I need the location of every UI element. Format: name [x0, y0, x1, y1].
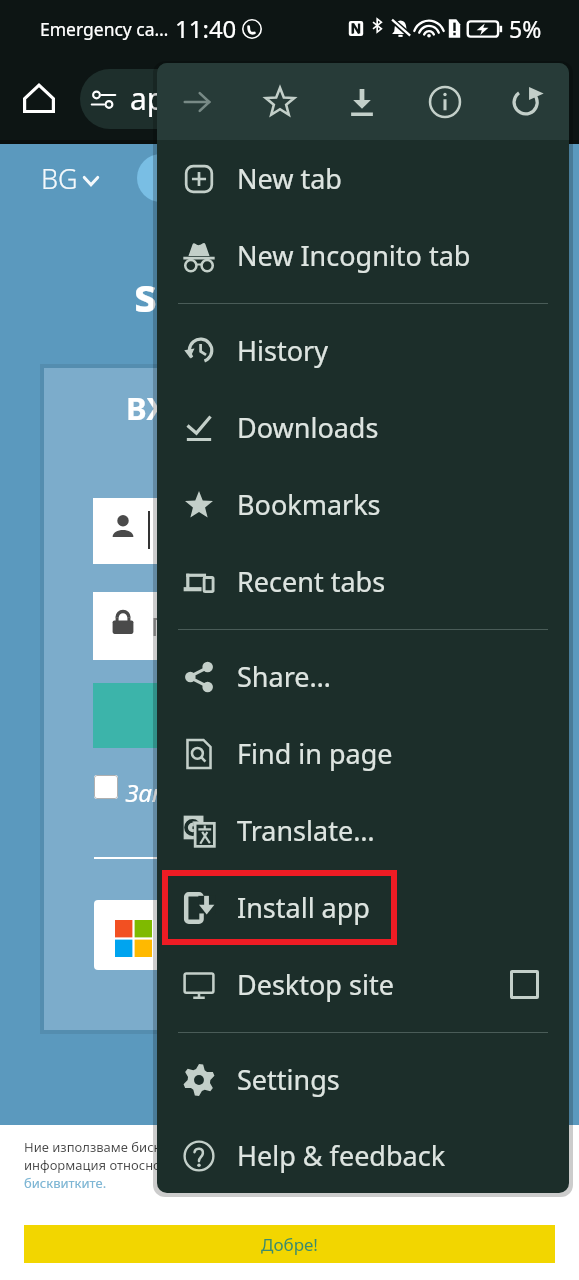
staticText: Share…	[237, 658, 331, 695]
button[interactable]: ap	[80, 69, 380, 129]
staticText: информация относно	[24, 1156, 161, 1174]
staticText: Help & feedback	[237, 1137, 446, 1174]
staticText: бисквитките.	[24, 1174, 107, 1192]
staticText: Find in page	[237, 735, 393, 772]
button[interactable]: Translate…	[157, 792, 569, 869]
button[interactable]: Bookmarks	[157, 466, 569, 543]
button[interactable]: Settings	[157, 1041, 569, 1118]
staticText: New Incognito tab	[237, 237, 471, 274]
button[interactable]: Share…	[157, 638, 569, 715]
staticText: Install app	[237, 889, 370, 926]
staticText: Emergency ca…	[40, 17, 169, 41]
staticText: Downloads	[237, 409, 379, 446]
button[interactable]: New Incognito tab	[157, 217, 569, 294]
staticText: New tab	[237, 160, 342, 197]
staticText: 5%	[509, 13, 542, 44]
button[interactable]: Forward	[167, 72, 227, 132]
button[interactable]: Bookmark	[250, 72, 310, 132]
button[interactable]: Reload	[497, 72, 557, 132]
button[interactable]: Download	[332, 72, 392, 132]
button[interactable]: New tab	[157, 140, 569, 217]
staticText: BG	[41, 160, 78, 197]
staticText: ap	[130, 78, 166, 119]
button[interactable]: Find in page	[157, 715, 569, 792]
staticText: 11:40	[175, 12, 237, 45]
staticText: Desktop site	[237, 966, 394, 1003]
button[interactable]: BG	[41, 160, 99, 197]
staticText: ВХ	[126, 387, 168, 429]
button[interactable]: Help & feedback	[157, 1118, 569, 1193]
staticText: Bookmarks	[237, 486, 381, 523]
button[interactable]: Page info	[415, 72, 475, 132]
staticText: Translate…	[237, 812, 375, 849]
button[interactable]: History	[157, 312, 569, 389]
staticText: Зап	[126, 776, 166, 809]
staticText: Добре!	[261, 1233, 318, 1256]
button[interactable]: Recent tabs	[157, 543, 569, 620]
staticText: s	[134, 263, 158, 326]
staticText: П	[151, 608, 171, 643]
button[interactable]: Install app	[157, 869, 569, 946]
button[interactable]: Добре!	[24, 1225, 555, 1263]
staticText: History	[237, 332, 328, 369]
staticText: Recent tabs	[237, 563, 386, 600]
button[interactable]: Home	[15, 74, 63, 122]
staticText: Settings	[237, 1061, 340, 1098]
staticText: Ние използваме биск	[24, 1138, 161, 1156]
button[interactable]: Desktop site	[157, 946, 569, 1023]
button[interactable]: Downloads	[157, 389, 569, 466]
